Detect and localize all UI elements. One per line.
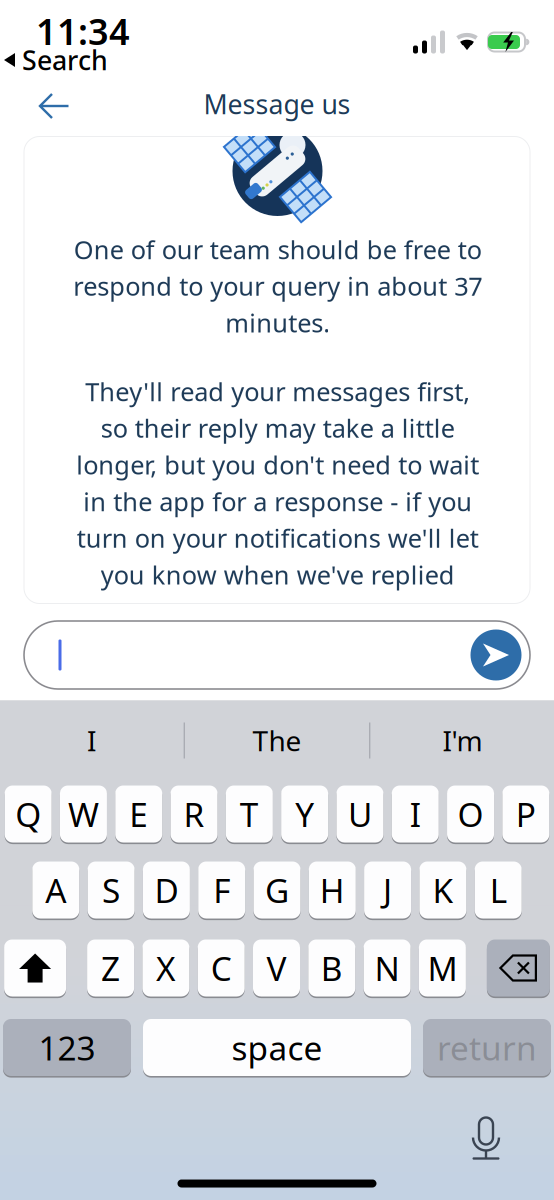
staticText: 123: [38, 1025, 95, 1070]
staticText: Y: [295, 792, 314, 836]
button[interactable]: I: [0, 700, 184, 780]
button[interactable]: Back: [17, 81, 91, 131]
staticText: S: [102, 868, 120, 912]
staticText: I: [410, 792, 421, 836]
button[interactable]: Send: [467, 626, 525, 684]
staticText: return: [437, 1025, 537, 1070]
staticText: Search: [22, 42, 108, 78]
staticText: B: [321, 946, 343, 990]
staticText: J: [383, 868, 392, 912]
staticText: T: [240, 792, 259, 836]
button[interactable]: V: [253, 938, 300, 998]
button[interactable]: Y: [281, 784, 328, 844]
button[interactable]: L: [475, 860, 522, 920]
button[interactable]: F: [198, 860, 245, 920]
staticText: O: [458, 792, 484, 836]
button[interactable]: O: [447, 784, 494, 844]
button[interactable]: P: [502, 784, 549, 844]
button[interactable]: N: [364, 938, 411, 998]
button[interactable]: R: [170, 784, 217, 844]
button[interactable]: 123: [3, 1017, 131, 1077]
button[interactable]: W: [60, 784, 107, 844]
staticText: One of our team should be free to respon…: [73, 232, 482, 339]
button[interactable]: return: [423, 1017, 551, 1077]
staticText: I'm: [442, 722, 482, 759]
staticText: X: [156, 946, 176, 990]
button[interactable]: The: [185, 700, 369, 780]
staticText: P: [516, 792, 536, 836]
button[interactable]: A: [32, 860, 79, 920]
staticText: Q: [15, 792, 41, 836]
button[interactable]: I'm: [370, 700, 554, 780]
button[interactable]: space: [143, 1017, 411, 1077]
button[interactable]: T: [226, 784, 273, 844]
staticText: M: [427, 946, 457, 990]
staticText: K: [432, 868, 453, 912]
button[interactable]: Q: [5, 784, 52, 844]
staticText: E: [129, 792, 148, 836]
button[interactable]: C: [198, 938, 245, 998]
staticText: I: [87, 722, 96, 759]
staticText: H: [320, 868, 345, 912]
button[interactable]: Delete: [487, 938, 550, 998]
staticText: N: [375, 946, 400, 990]
staticText: V: [266, 946, 286, 990]
button[interactable]: E: [115, 784, 162, 844]
staticText: space: [231, 1025, 322, 1070]
button[interactable]: G: [253, 860, 300, 920]
staticText: G: [265, 868, 289, 912]
button[interactable]: X: [142, 938, 189, 998]
button[interactable]: S: [88, 860, 135, 920]
button[interactable]: Dictate: [455, 1107, 517, 1169]
button[interactable]: D: [143, 860, 190, 920]
staticText: A: [45, 868, 66, 912]
staticText: D: [154, 868, 178, 912]
staticText: 11:34: [36, 7, 130, 55]
staticText: Message us: [203, 86, 350, 122]
button[interactable]: M: [419, 938, 466, 998]
staticText: W: [68, 792, 99, 836]
staticText: U: [348, 792, 372, 836]
button[interactable]: J: [364, 860, 411, 920]
staticText: The: [252, 722, 301, 759]
button[interactable]: H: [309, 860, 356, 920]
button[interactable]: Shift: [4, 938, 66, 998]
button[interactable]: B: [308, 938, 355, 998]
button[interactable]: K: [419, 860, 466, 920]
staticText: R: [183, 792, 204, 836]
staticText: C: [211, 946, 232, 990]
staticText: L: [490, 868, 507, 912]
button[interactable]: I: [392, 784, 439, 844]
staticText: Z: [101, 946, 120, 990]
button[interactable]: U: [336, 784, 383, 844]
staticText: They'll read your messages first, so the…: [76, 375, 479, 591]
staticText: F: [213, 868, 230, 912]
button[interactable]: Z: [87, 938, 134, 998]
